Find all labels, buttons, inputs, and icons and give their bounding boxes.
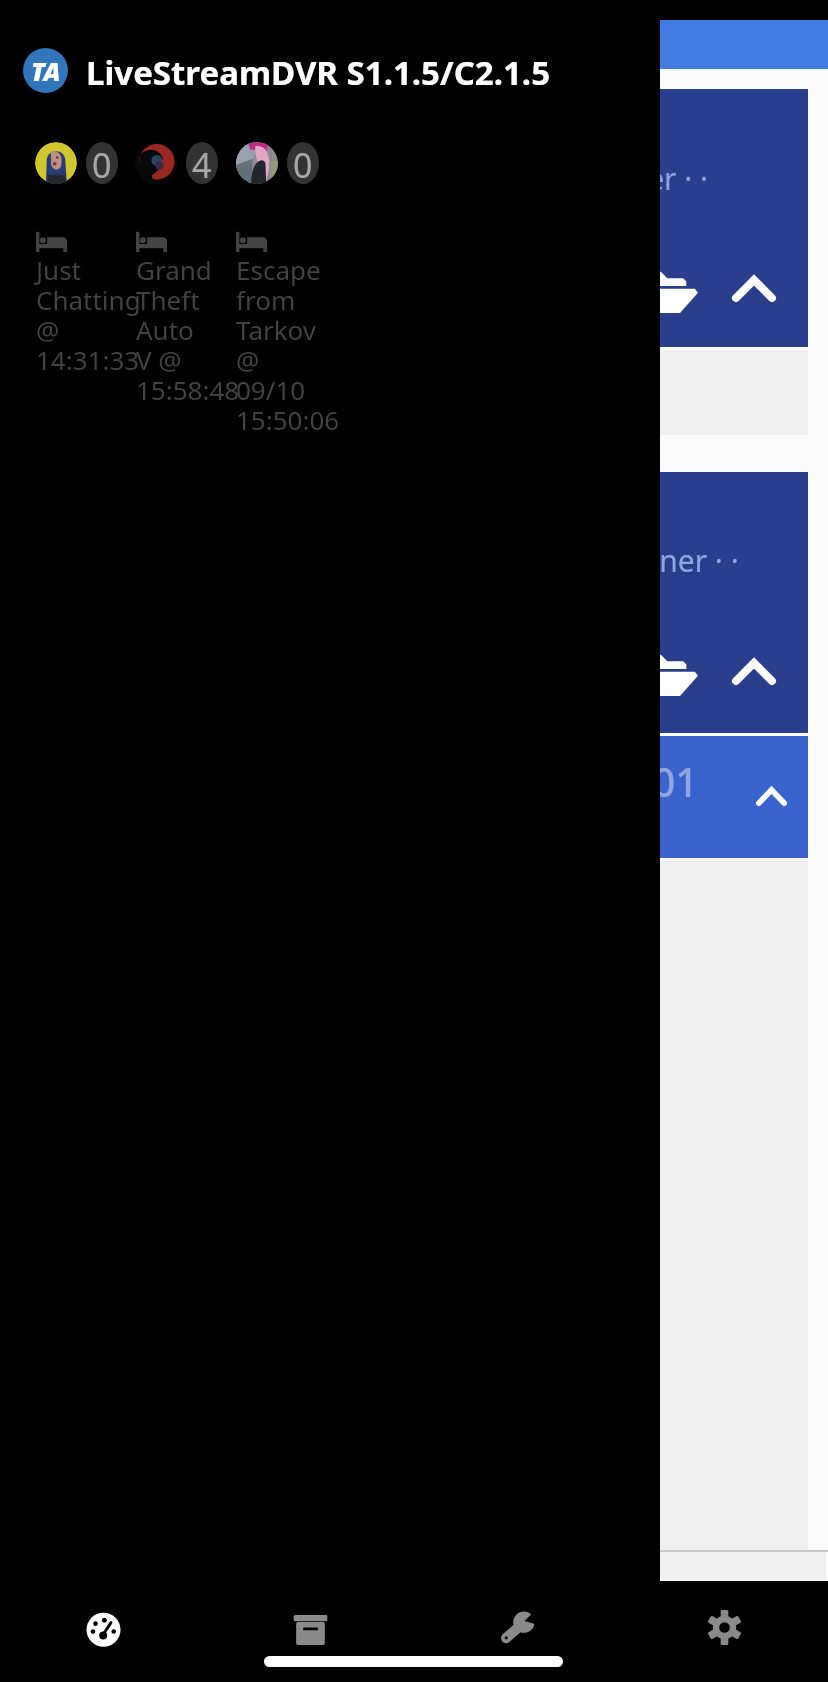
staticText: 0 — [293, 142, 313, 184]
button[interactable]: Broadcaster · · — [0, 89, 808, 347]
button[interactable]: Collapse — [724, 261, 784, 317]
button[interactable]: Archive — [207, 1581, 414, 1682]
button[interactable]: 0 — [236, 142, 319, 186]
staticText: Grand Theft Auto V @ 15:58:48 — [136, 256, 240, 406]
staticText: TA — [31, 54, 61, 88]
button[interactable]: Just Chatting @ 14:31:33 — [36, 231, 141, 351]
button[interactable]: 2023-09-10 15:50:01 — [0, 736, 808, 858]
button[interactable]: 4 — [135, 142, 218, 186]
button[interactable]: Dashboard — [0, 1581, 207, 1682]
button[interactable]: Open folder — [636, 262, 706, 322]
staticText: 2023-09-10 15:50:01 — [320, 754, 699, 808]
button[interactable]: Partner · · — [0, 472, 808, 733]
staticText: 4 — [192, 142, 212, 184]
button[interactable]: Collapse — [743, 774, 800, 819]
button[interactable]: Settings — [621, 1581, 828, 1682]
button[interactable]: Escape from Tarkov @ 09/10 15:50:06 — [236, 231, 340, 411]
button[interactable]: 0 — [35, 142, 118, 186]
staticText: Broadcaster · · — [506, 158, 709, 199]
staticText: Partner · · — [601, 540, 739, 581]
button[interactable]: LiveStreamDVR S1.1.5/C2.1.5 — [86, 50, 551, 95]
button[interactable]: App logo — [23, 48, 68, 93]
staticText: Escape from Tarkov @ 09/10 15:50:06 — [236, 256, 340, 436]
button[interactable]: Collapse — [724, 644, 784, 700]
button[interactable]: Open folder — [636, 645, 706, 705]
button[interactable]: Grand Theft Auto V @ 15:58:48 — [136, 231, 240, 381]
staticText: Just Chatting @ 14:31:33 — [36, 256, 141, 376]
button[interactable]: Tools — [414, 1581, 621, 1682]
button[interactable] — [0, 20, 828, 69]
staticText: 0 — [92, 142, 112, 184]
